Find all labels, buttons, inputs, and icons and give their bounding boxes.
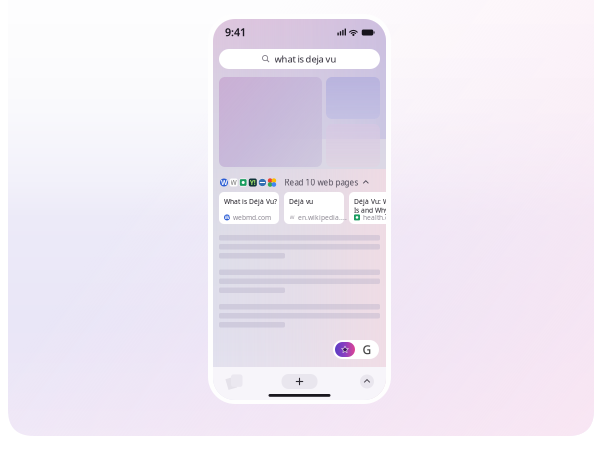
staticText: W xyxy=(231,178,237,187)
staticText: Déjà Vu: What It Is and Why It H xyxy=(354,197,405,215)
staticText: Read 10 web pages xyxy=(285,177,359,188)
staticText: Déjà vu xyxy=(289,197,313,206)
staticText: webmd.com xyxy=(233,213,271,222)
staticText: health.cl xyxy=(363,213,390,222)
staticText: en.wikipedia.... xyxy=(298,213,347,222)
button[interactable]: what is deja vu xyxy=(219,49,380,69)
staticText: G xyxy=(362,341,371,357)
staticText: what is deja vu xyxy=(274,53,336,65)
staticText: What is Déjà Vu? xyxy=(224,197,277,206)
button[interactable]: Expand toolbar xyxy=(360,374,374,388)
staticText: Y! xyxy=(250,178,256,187)
staticText: W xyxy=(224,214,229,221)
button[interactable]: What is Déjà Vu? xyxy=(219,192,279,224)
button[interactable]: New tab xyxy=(281,374,317,389)
button[interactable]: AI assistant xyxy=(335,342,355,357)
button[interactable]: Google search xyxy=(356,342,378,357)
staticText: W xyxy=(289,214,294,221)
button[interactable]: W xyxy=(219,177,380,188)
button[interactable]: Déjà Vu: What It Is and Why It H xyxy=(349,192,409,224)
button[interactable]: Déjà vu xyxy=(284,192,344,224)
button[interactable]: Tabs xyxy=(224,372,244,392)
staticText: W xyxy=(221,178,227,187)
staticText: 9:41 xyxy=(225,25,246,39)
